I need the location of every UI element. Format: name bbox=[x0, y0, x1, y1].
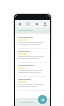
button[interactable] bbox=[15, 49, 50, 62]
button[interactable]: Profile bbox=[42, 20, 48, 28]
button[interactable]: Home bbox=[17, 20, 23, 28]
button[interactable]: Search bbox=[25, 20, 31, 28]
button[interactable] bbox=[15, 98, 50, 106]
button[interactable] bbox=[15, 77, 50, 90]
button[interactable]: Favorites bbox=[34, 20, 40, 28]
button[interactable] bbox=[15, 63, 50, 76]
button[interactable] bbox=[15, 28, 50, 33]
button[interactable] bbox=[15, 35, 50, 48]
button[interactable]: Write a review bbox=[38, 95, 47, 104]
